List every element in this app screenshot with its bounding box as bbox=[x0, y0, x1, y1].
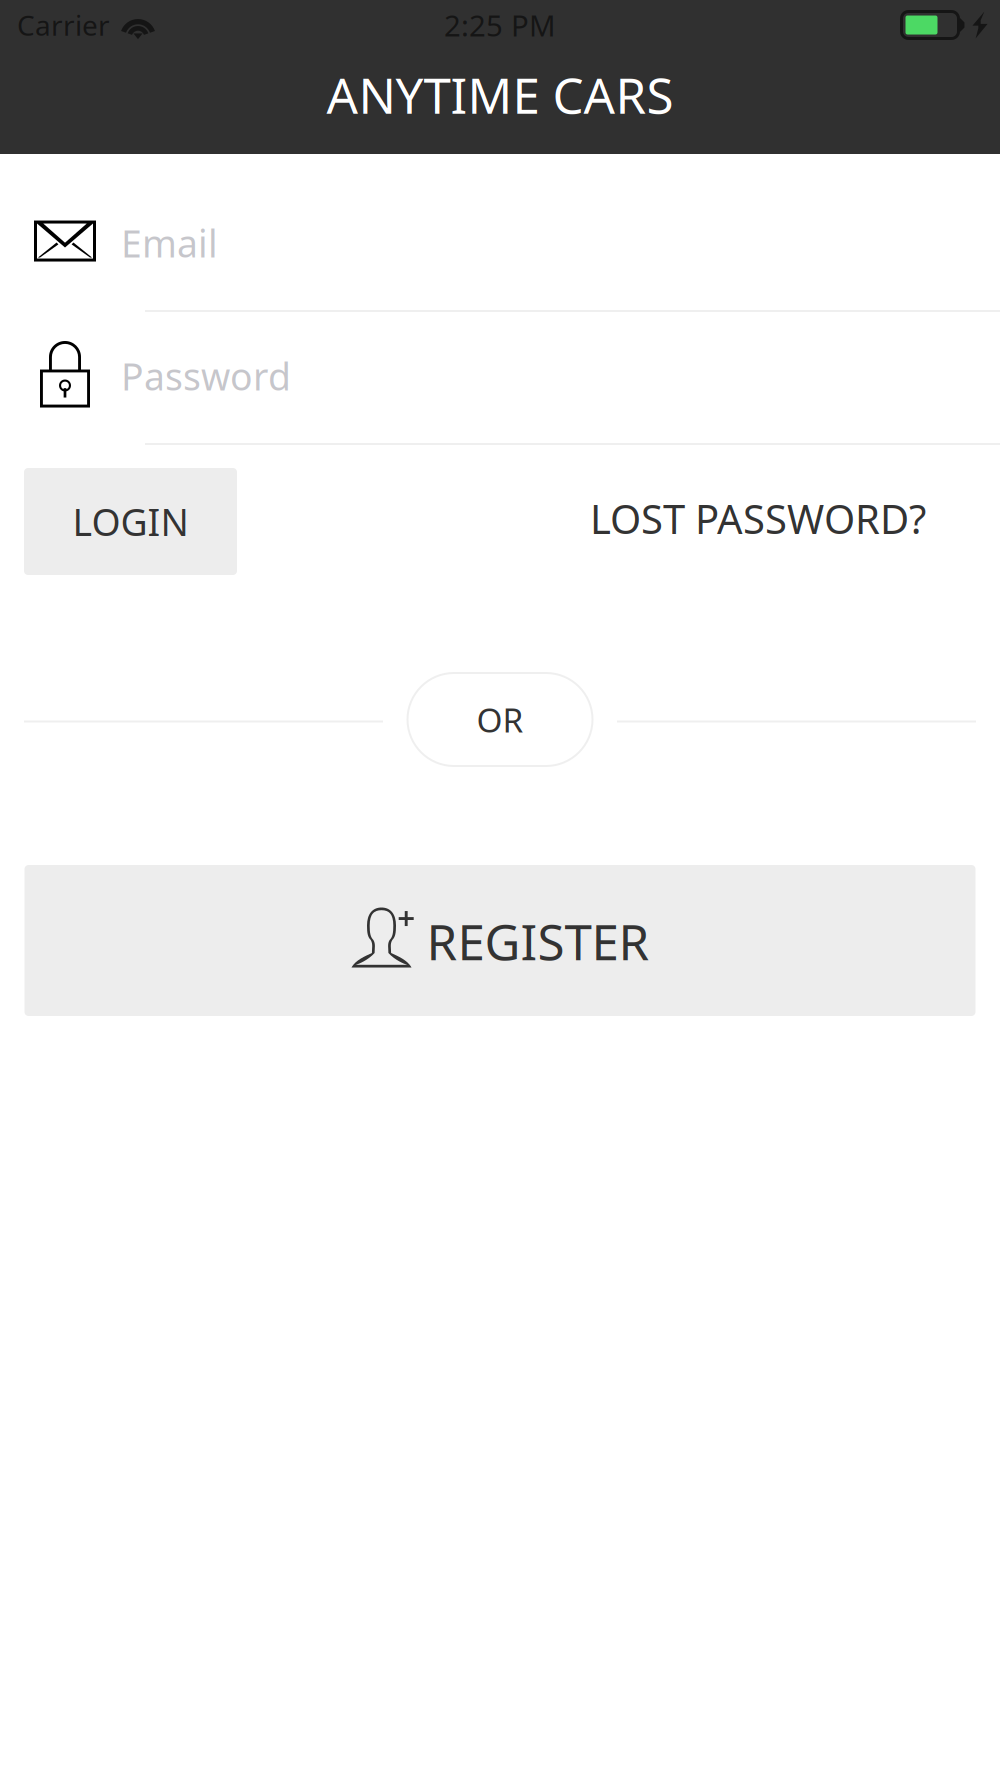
staticText: Carrier bbox=[17, 6, 110, 44]
button[interactable]: LOGIN bbox=[24, 468, 237, 575]
staticText: LOST PASSWORD? bbox=[590, 492, 926, 545]
button[interactable]: Email bbox=[0, 206, 1000, 312]
button[interactable]: REGISTER bbox=[24, 865, 975, 1016]
staticText: Email bbox=[121, 218, 218, 268]
staticText: Password bbox=[121, 351, 291, 401]
staticText: ANYTIME CARS bbox=[326, 62, 673, 127]
staticText: REGISTER bbox=[426, 908, 649, 974]
button[interactable]: Password bbox=[0, 339, 1000, 445]
button[interactable]: LOST PASSWORD? bbox=[590, 468, 926, 574]
staticText: LOGIN bbox=[72, 497, 188, 546]
staticText: OR bbox=[476, 697, 523, 742]
staticText: 2:25 PM bbox=[444, 5, 556, 44]
